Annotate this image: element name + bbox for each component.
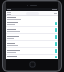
button[interactable]: Status [6, 48, 58, 55]
button[interactable]: Status [6, 41, 58, 48]
button[interactable]: Status [6, 55, 58, 59]
button[interactable]: Status [55, 22, 57, 25]
button[interactable]: Status [55, 49, 57, 53]
button[interactable]: Status [6, 34, 58, 41]
button[interactable]: Status [6, 27, 58, 34]
button[interactable]: Status [55, 35, 57, 39]
button[interactable]: Home [29, 61, 36, 68]
button[interactable]: Status [55, 28, 57, 32]
button[interactable]: Status [55, 42, 57, 46]
button[interactable]: Status [6, 21, 58, 27]
button[interactable]: Search [6, 11, 58, 16]
button[interactable]: Status [55, 56, 57, 58]
